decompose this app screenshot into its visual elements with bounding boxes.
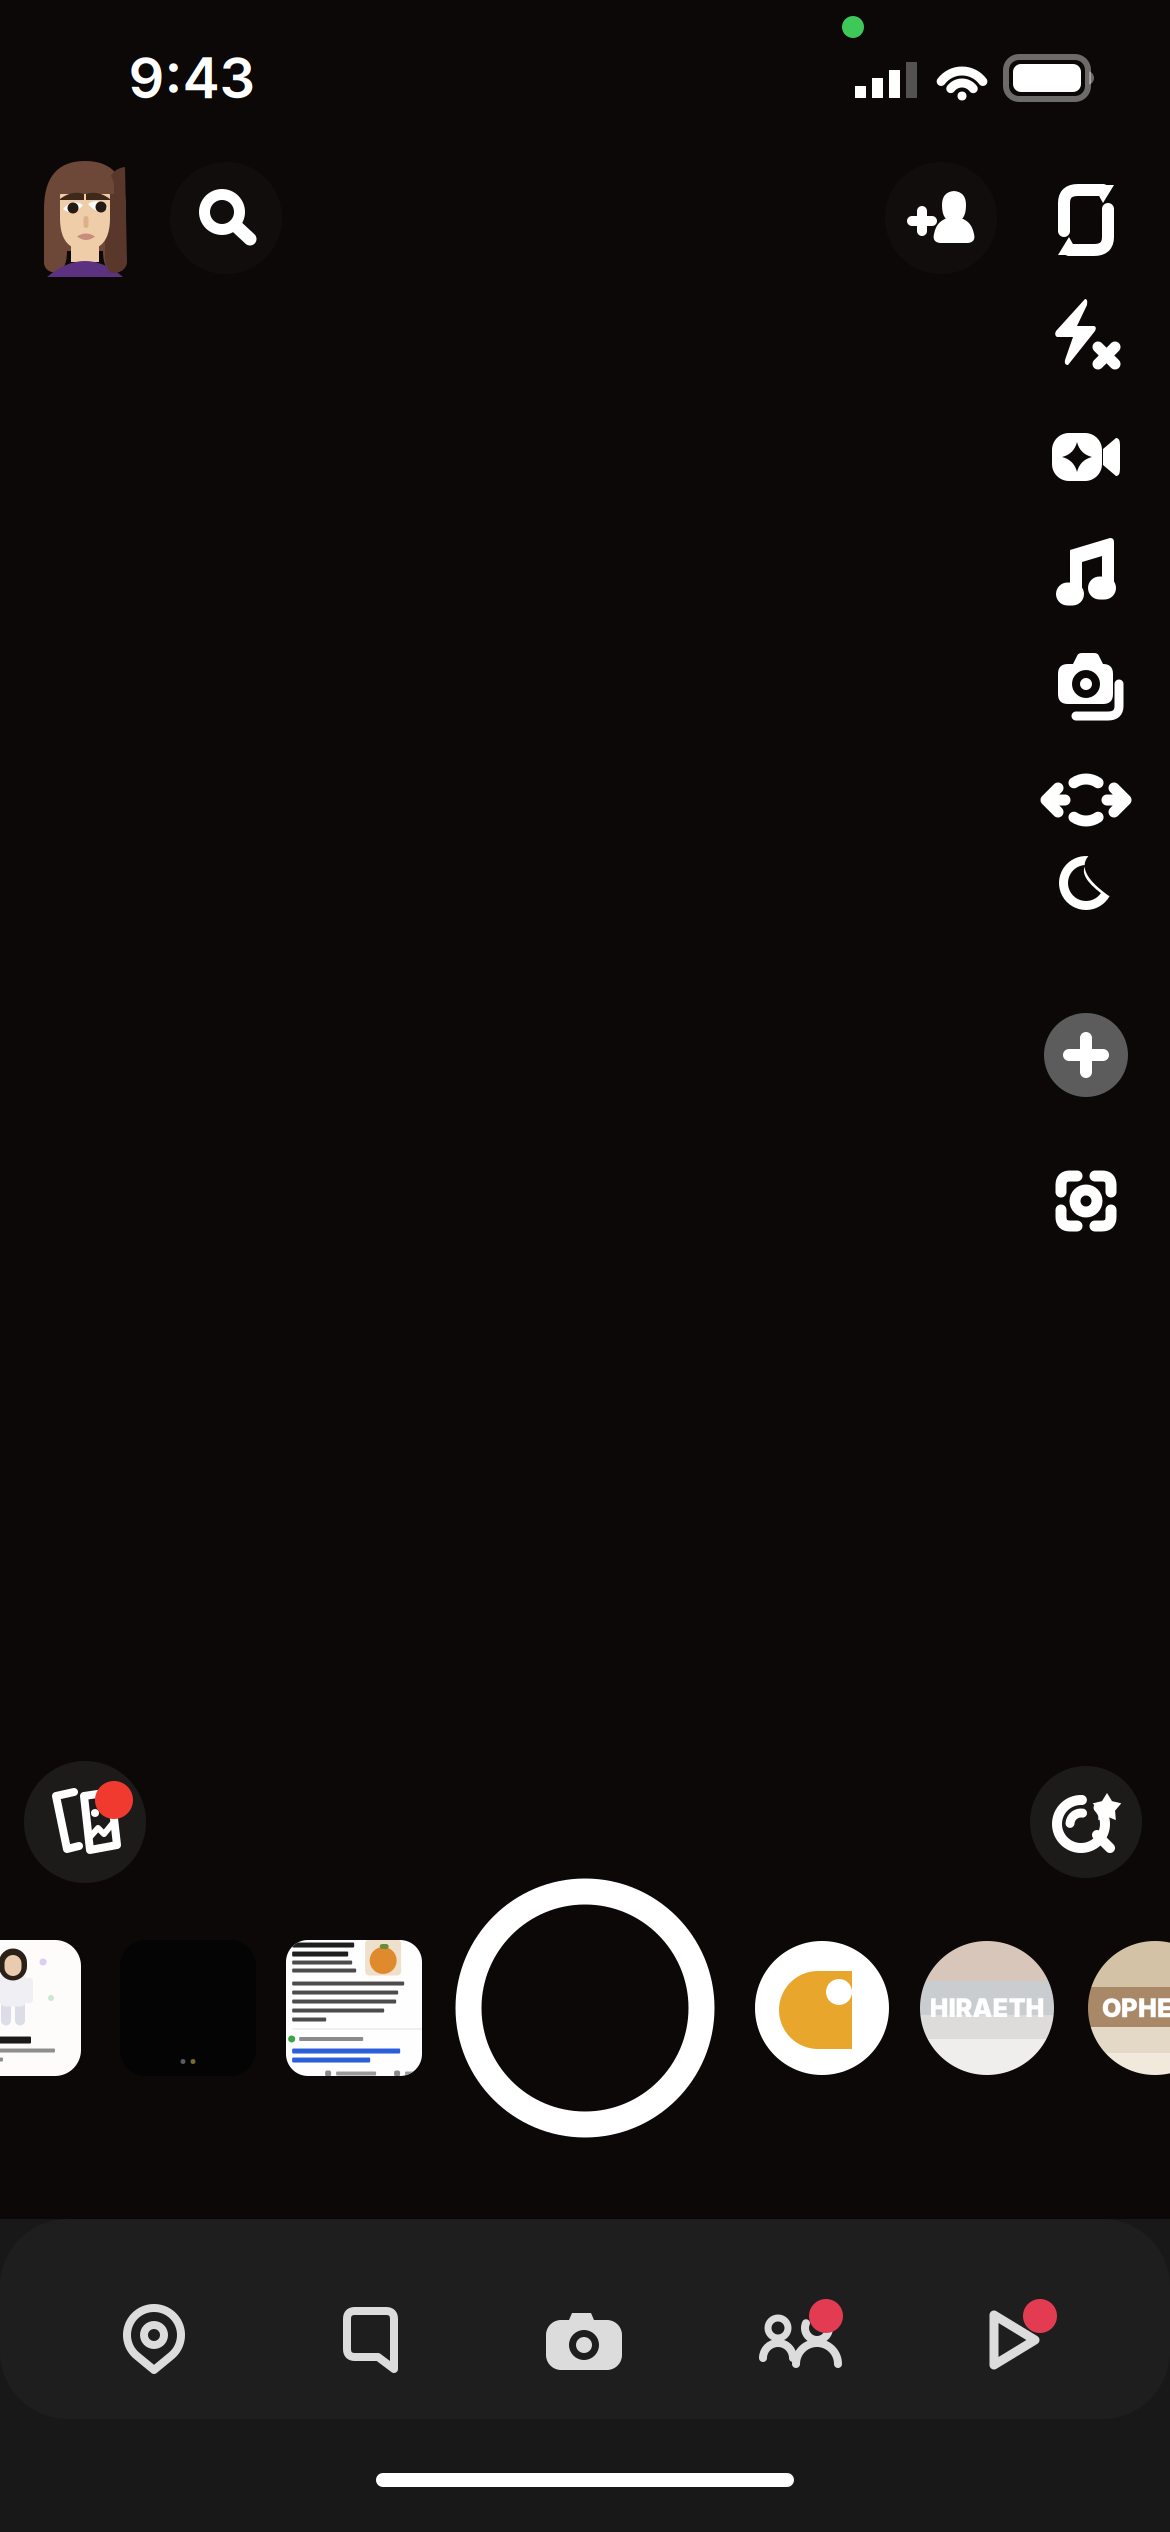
button[interactable]: Explore Lenses [1030,1766,1142,1878]
button[interactable]: Scan [1053,1168,1119,1234]
staticText: 9:43 [128,44,255,112]
button[interactable]: Music [1052,534,1120,610]
button[interactable]: Swap Camera [1038,769,1134,831]
button[interactable]: Stories [706,2260,886,2420]
button[interactable]: Night Mode [1053,850,1119,918]
button[interactable]: Memories [24,1761,146,1883]
button[interactable]: Chat [281,2260,461,2420]
button[interactable]: Carhartt Lens [755,1941,889,2075]
staticText: OPHE [1102,1993,1170,2023]
button[interactable]: Profile [29,157,141,279]
button[interactable]: Map [64,2260,244,2420]
button[interactable]: Flip Camera [1051,181,1121,259]
button[interactable]: Spotlight [924,2260,1104,2420]
button[interactable]: Article Lens [286,1940,422,2076]
button[interactable]: Flash Off [1051,295,1121,369]
button[interactable]: Lens [120,1940,256,2076]
button[interactable]: Avatar Lens [0,1940,81,2076]
button[interactable]: Search [170,162,282,274]
button[interactable]: Timer [1049,650,1123,726]
button[interactable]: Ophelia Lens [1088,1941,1170,2075]
button[interactable]: Camera [494,2260,674,2420]
button[interactable]: Video Effects [1050,429,1122,485]
staticText: HIRAETH [929,1993,1044,2023]
button[interactable]: More Tools [1044,1013,1128,1097]
button[interactable]: Add Friends [885,162,997,274]
button[interactable]: Capture [468,1891,701,2124]
button[interactable]: Hiraeth Lens [920,1941,1054,2075]
